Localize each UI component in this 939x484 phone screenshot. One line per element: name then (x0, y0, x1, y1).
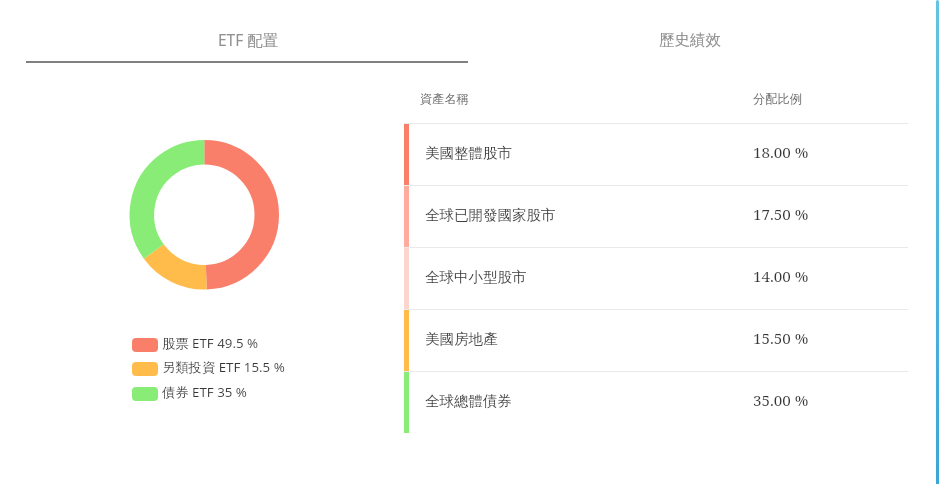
button[interactable]: 債券 ETF 35 % (132, 383, 247, 401)
button[interactable]: 另類投資 ETF 15.5 % (132, 358, 285, 376)
button[interactable]: 美國整體股市 (404, 124, 908, 185)
staticText: 債券 ETF 35 % (162, 383, 247, 401)
staticText: 美國整體股市 (425, 144, 512, 162)
button[interactable]: 全球已開發國家股市 (404, 186, 908, 247)
staticText: 全球中小型股市 (425, 268, 527, 286)
button[interactable]: 美國房地產 (404, 310, 908, 371)
staticText: 全球已開發國家股市 (425, 206, 556, 224)
button[interactable]: ETF 配置 (0, 0, 470, 63)
button[interactable]: 全球中小型股市 (404, 248, 908, 309)
staticText: 15.50 % (753, 328, 809, 349)
button[interactable]: 歷史績效 (470, 0, 939, 63)
staticText: 14.00 % (753, 266, 809, 287)
staticText: 資產名稱 (420, 91, 469, 106)
staticText: 另類投資 ETF 15.5 % (162, 358, 285, 376)
staticText: 全球總體債券 (425, 392, 512, 410)
staticText: 股票 ETF 49.5 % (162, 334, 259, 352)
staticText: ETF 配置 (218, 29, 279, 50)
staticText: 歷史績效 (659, 30, 721, 50)
staticText: 18.00 % (753, 142, 809, 163)
staticText: 分配比例 (753, 91, 802, 106)
button[interactable]: 全球總體債券 (404, 372, 908, 433)
staticText: 美國房地產 (425, 330, 498, 348)
staticText: 35.00 % (753, 390, 809, 411)
button[interactable]: 股票 ETF 49.5 % (132, 334, 259, 352)
staticText: 17.50 % (753, 204, 809, 225)
